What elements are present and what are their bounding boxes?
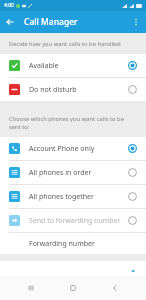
staticText: Forwarding number — [29, 239, 95, 249]
button[interactable]: More options — [126, 12, 146, 32]
button[interactable]: List of phones to ring — [0, 261, 146, 276]
staticText: Send to forwarding number — [29, 216, 128, 226]
button[interactable]: All phones in order — [0, 161, 146, 184]
staticText: Decide how you want calls to be handled: — [9, 40, 122, 48]
button[interactable]: Forwarding number — [0, 233, 146, 254]
button[interactable]: Back — [0, 12, 20, 32]
staticText: Call Manager — [24, 16, 78, 28]
staticText: Do not disturb — [29, 85, 128, 95]
staticText: Choose which phones you want calls to be… — [9, 115, 137, 131]
button[interactable]: Send to forwarding number — [0, 209, 146, 232]
button[interactable]: All phones together — [0, 185, 146, 208]
button[interactable]: Home — [62, 277, 84, 299]
staticText: Available — [29, 61, 128, 71]
staticText: Account Phone only — [29, 144, 128, 154]
button[interactable]: Recent apps — [20, 277, 42, 299]
staticText: All phones together — [29, 192, 128, 202]
button[interactable]: Do not disturb — [0, 78, 146, 101]
staticText: All phones in order — [29, 168, 128, 178]
button[interactable]: Back — [104, 277, 126, 299]
staticText: 4:00 — [4, 2, 14, 9]
button[interactable]: Available — [0, 54, 146, 77]
button[interactable]: Account Phone only — [0, 137, 146, 160]
